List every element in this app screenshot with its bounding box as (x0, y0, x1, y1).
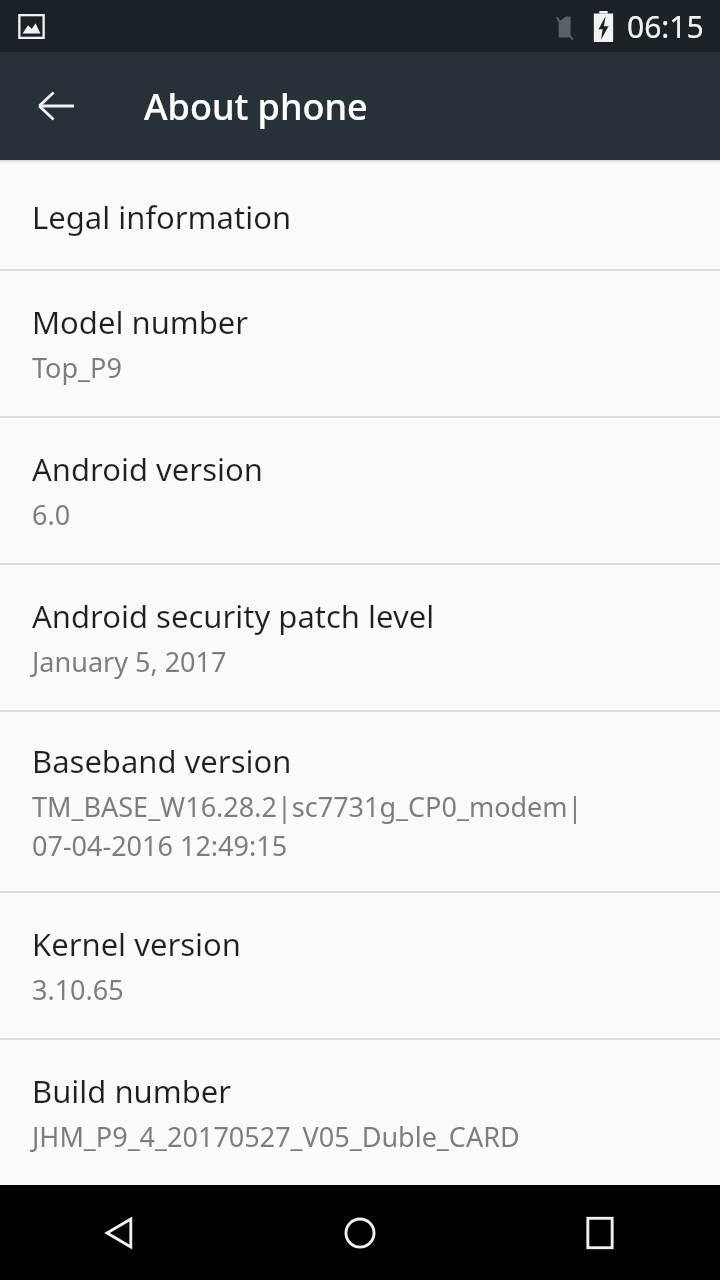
button[interactable]: Home (240, 1185, 480, 1280)
staticText: Build number (32, 1070, 232, 1112)
staticText: TM_BASE_W16.28.2|sc7731g_CP0_modem| 07-0… (32, 788, 583, 864)
button[interactable]: Android version (0, 418, 720, 563)
staticText: Model number (32, 301, 249, 343)
staticText: Android security patch level (32, 595, 435, 637)
button[interactable]: Build number (0, 1040, 720, 1185)
staticText: 06:15 (627, 6, 704, 47)
staticText: JHM_P9_4_20170527_V05_Duble_CARD (32, 1118, 520, 1155)
button[interactable]: Baseband version (0, 712, 720, 891)
staticText: Legal information (32, 196, 292, 238)
staticText: January 5, 2017 (32, 643, 227, 680)
button[interactable]: Back (0, 1185, 240, 1280)
button[interactable]: Model number (0, 271, 720, 416)
staticText: 3.10.65 (32, 971, 124, 1008)
button[interactable]: Kernel version (0, 893, 720, 1038)
staticText: Top_P9 (32, 349, 122, 386)
staticText: Android version (32, 448, 263, 490)
button[interactable]: Legal information (0, 164, 720, 269)
button[interactable]: Android security patch level (0, 565, 720, 710)
staticText: Kernel version (32, 923, 241, 965)
staticText: About phone (144, 82, 368, 131)
button[interactable]: Recent apps (480, 1185, 720, 1280)
staticText: 6.0 (32, 496, 71, 533)
button[interactable]: Navigate up (16, 66, 96, 146)
staticText: Baseband version (32, 740, 292, 782)
